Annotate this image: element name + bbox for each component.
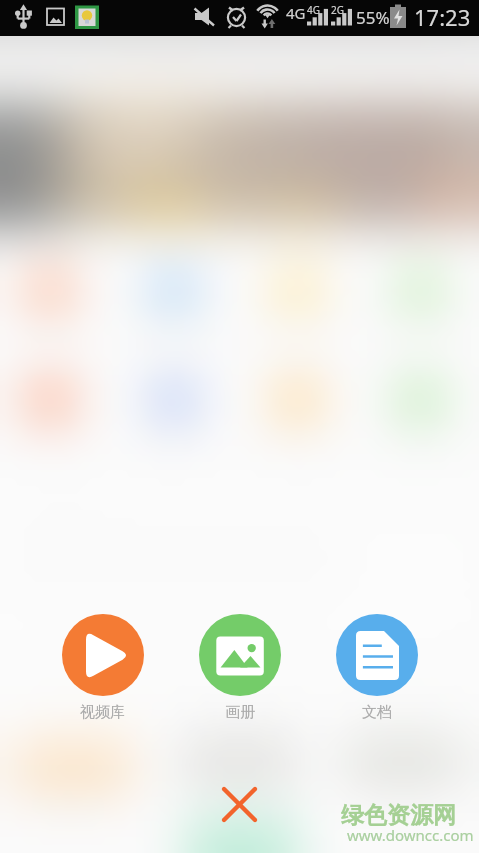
staticText: 55%: [356, 6, 390, 29]
button[interactable]: 画册: [171, 614, 308, 722]
staticText: 4G: [286, 3, 306, 23]
staticText: 画册: [225, 703, 255, 722]
button[interactable]: 文档: [308, 614, 445, 722]
staticText: 17:23: [414, 2, 471, 32]
button[interactable]: 视频库: [34, 614, 171, 722]
staticText: 视频库: [80, 703, 125, 722]
staticText: 绿色资源网: [341, 801, 456, 830]
button[interactable]: Close: [215, 780, 264, 829]
staticText: 4G: [307, 3, 320, 17]
staticText: 2G: [331, 3, 344, 17]
staticText: 文档: [362, 703, 392, 722]
staticText: www.downcc.com: [347, 825, 474, 845]
